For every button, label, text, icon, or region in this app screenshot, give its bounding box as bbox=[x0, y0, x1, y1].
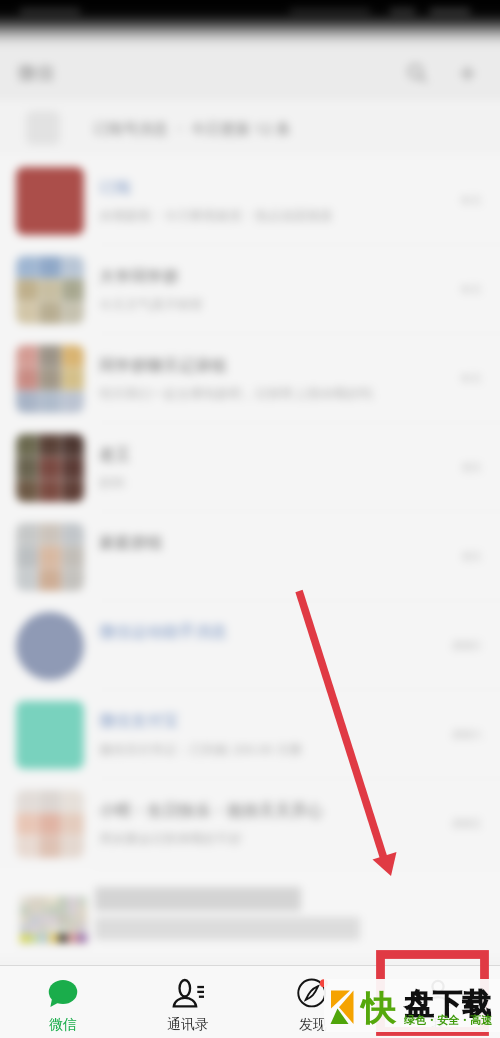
staticText: 家庭群组 bbox=[99, 533, 163, 553]
staticText: 老王 bbox=[99, 445, 131, 465]
staticText: 星期日 bbox=[452, 639, 482, 652]
button[interactable]: 订阅号消息 ・ 今日更新 12 条 bbox=[0, 100, 500, 156]
button[interactable]: 微信运动助手消息 bbox=[0, 601, 500, 690]
staticText: 订阅号消息 ・ 今日更新 12 条 bbox=[93, 118, 291, 138]
staticText: 同学群聊天记录组 bbox=[99, 356, 227, 376]
staticText: 盘下载 bbox=[404, 986, 491, 1023]
button[interactable]: 微信 bbox=[0, 966, 125, 1038]
staticText: 微信运动助手消息 bbox=[99, 622, 227, 642]
staticText: 发现 bbox=[299, 1016, 327, 1034]
staticText: 星期五 bbox=[452, 817, 482, 830]
button[interactable]: 家庭群组 bbox=[0, 512, 500, 601]
staticText: 明天我们一起去看电影吧，记得带上雨伞哦好吗 bbox=[99, 385, 372, 401]
button[interactable]: 微信支付宝 bbox=[0, 690, 500, 779]
staticText: 微信支付凭证：已到账 200.00 元整 bbox=[99, 740, 303, 758]
button[interactable]: Search bbox=[400, 56, 434, 90]
button[interactable]: 小明・生日快乐・祝你天天开心 bbox=[0, 779, 500, 868]
staticText: 周末聚会记得来哦好不好 bbox=[99, 830, 242, 846]
staticText: 小明・生日快乐・祝你天天开心 bbox=[99, 801, 323, 821]
staticText: 绿色・安全・高速 bbox=[404, 1013, 492, 1027]
button[interactable]: 通讯录 bbox=[125, 966, 250, 1038]
staticText: 大学同学群 bbox=[99, 267, 179, 287]
button[interactable]: 同学群聊天记录组 bbox=[0, 334, 500, 423]
staticText: 微信支付宝 bbox=[99, 711, 179, 731]
staticText: 微信 bbox=[49, 1016, 77, 1034]
staticText: 微信 bbox=[18, 62, 54, 85]
staticText: 通讯录 bbox=[167, 1016, 209, 1034]
staticText: 订阅 bbox=[99, 178, 131, 198]
staticText: 央视新闻・今日要闻速览・热点追踪报道 bbox=[99, 207, 333, 223]
button[interactable]: 我 bbox=[375, 966, 500, 1038]
button[interactable]: 发现 bbox=[250, 966, 375, 1038]
staticText: 今天天气真不错呀 bbox=[99, 296, 203, 312]
button[interactable]: Add bbox=[450, 56, 484, 90]
staticText: 我 bbox=[431, 1016, 445, 1034]
button[interactable]: 订阅 bbox=[0, 156, 500, 245]
button[interactable]: 老王 bbox=[0, 423, 500, 512]
staticText: 星期六 bbox=[452, 728, 482, 741]
staticText: 快 bbox=[361, 987, 395, 1030]
staticText: 好的 bbox=[99, 474, 125, 490]
button[interactable]: 大学同学群 bbox=[0, 245, 500, 334]
